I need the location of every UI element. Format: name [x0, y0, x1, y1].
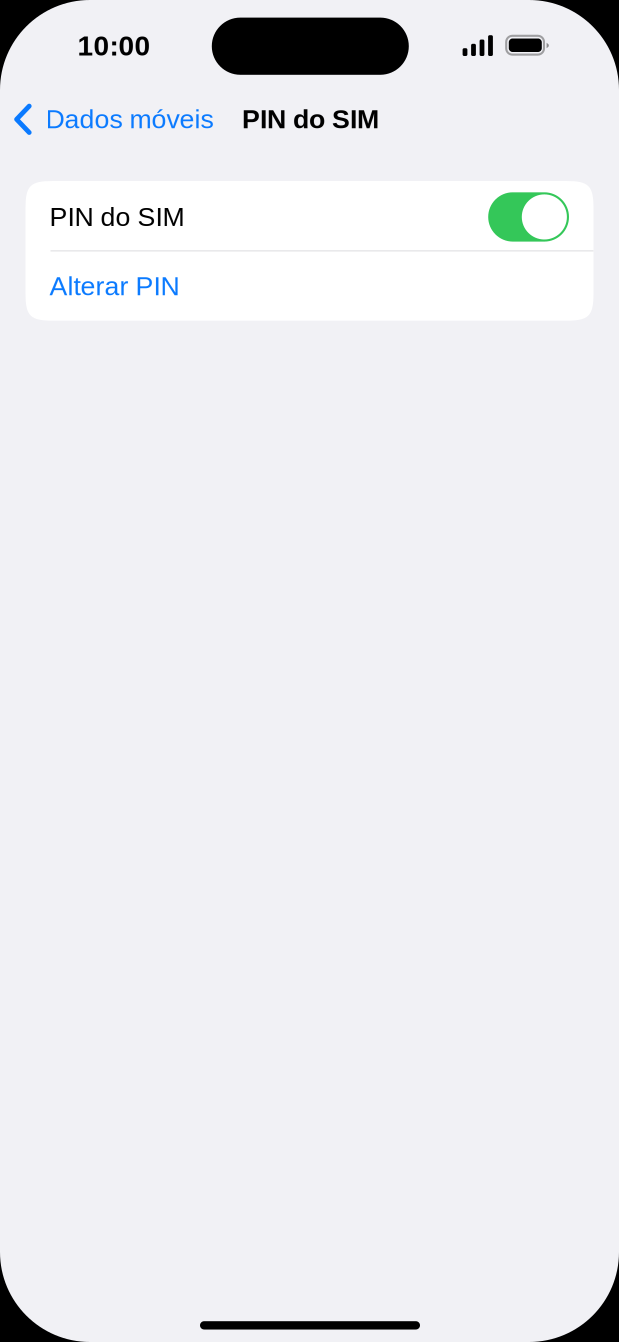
staticText: Alterar PIN — [49, 271, 179, 301]
button[interactable]: PIN do SIM — [241, 91, 386, 147]
staticText: Dados móveis — [45, 104, 213, 134]
button[interactable]: Alterar PIN — [25, 251, 593, 321]
button[interactable]: PIN do SIM — [25, 181, 593, 250]
staticText: PIN do SIM — [242, 104, 379, 134]
button[interactable]: Dados móveis — [0, 91, 222, 147]
staticText: 10:00 — [77, 30, 150, 61]
staticText: PIN do SIM — [49, 202, 184, 232]
